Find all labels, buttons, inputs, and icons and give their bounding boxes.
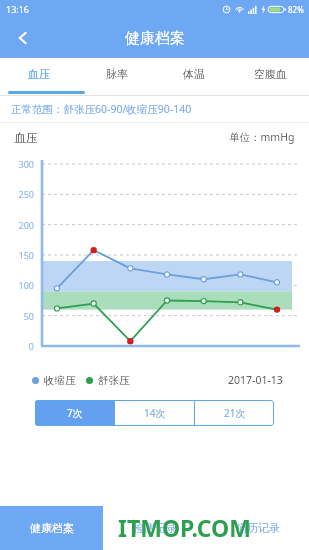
button[interactable]: 病历记录: [206, 506, 309, 550]
button[interactable]: 7次: [35, 400, 114, 426]
button[interactable]: 空腹血: [232, 58, 309, 95]
staticText: 空腹血: [254, 67, 287, 81]
staticText: 200: [0, 219, 34, 231]
staticText: 收缩压: [44, 374, 76, 387]
button[interactable]: Back: [0, 18, 46, 58]
button[interactable]: 血压: [0, 58, 78, 95]
staticText: 健康档案: [125, 29, 185, 48]
staticText: 检测记录: [133, 521, 177, 535]
staticText: ITMOP.COM: [118, 512, 251, 543]
staticText: 82%: [288, 4, 304, 15]
staticText: 150: [0, 249, 34, 261]
staticText: 300: [0, 158, 34, 170]
button[interactable]: 14次: [115, 400, 194, 426]
staticText: 0: [0, 340, 34, 352]
staticText: 舒张压: [98, 374, 130, 387]
staticText: 正常范围：舒张压60-90/收缩压90-140: [11, 102, 192, 116]
button[interactable]: 检测记录: [103, 506, 206, 550]
staticText: 病历记录: [236, 521, 280, 535]
staticText: 13:16: [6, 3, 30, 15]
staticText: 21次: [224, 406, 246, 420]
staticText: 健康档案: [30, 521, 74, 535]
staticText: 50: [0, 310, 34, 322]
staticText: 脉率: [106, 67, 128, 81]
button[interactable]: 21次: [195, 400, 274, 426]
button[interactable]: 体温: [155, 58, 232, 95]
button[interactable]: 健康档案: [0, 506, 103, 550]
staticText: 7次: [67, 406, 83, 420]
staticText: 14次: [144, 406, 166, 420]
staticText: 体温: [183, 67, 205, 81]
staticText: 2017-01-13: [228, 373, 283, 387]
staticText: 单位：mmHg: [229, 130, 295, 144]
staticText: 100: [0, 279, 34, 291]
staticText: 250: [0, 188, 34, 200]
staticText: 血压: [14, 130, 38, 145]
staticText: 血压: [28, 67, 50, 81]
button[interactable]: 脉率: [78, 58, 155, 95]
